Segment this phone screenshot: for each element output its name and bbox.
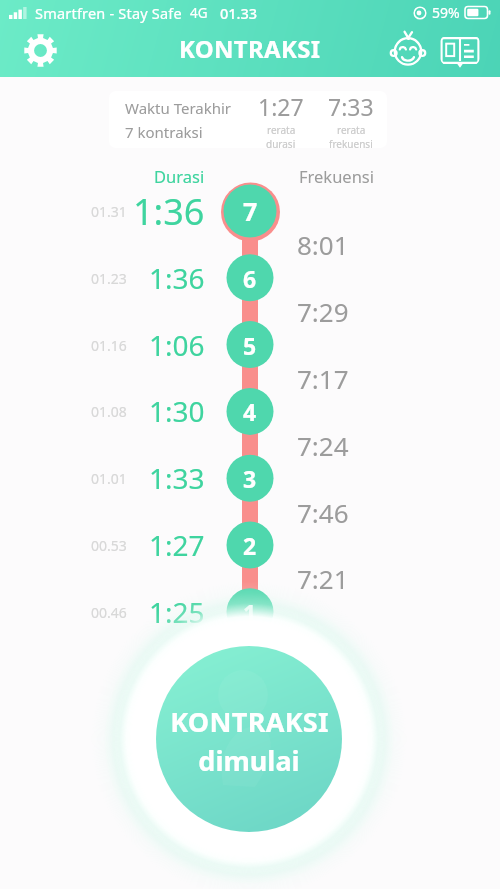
staticText: 00.46 <box>91 603 127 622</box>
staticText: KONTRAKSI <box>170 703 329 740</box>
button[interactable]: Baby profile <box>385 26 430 71</box>
staticText: Frekuensi <box>299 165 375 187</box>
staticText: 7:17 <box>297 361 349 396</box>
button[interactable]: Settings <box>18 28 62 72</box>
staticText: 1:33 <box>149 459 205 497</box>
staticText: 01.01 <box>91 469 127 488</box>
staticText: 01.23 <box>91 269 127 288</box>
staticText: 59% <box>432 3 460 22</box>
staticText: 01.16 <box>91 336 127 355</box>
staticText: 7:46 <box>297 495 349 530</box>
staticText: 4 <box>243 396 257 427</box>
staticText: 01.08 <box>91 402 127 421</box>
staticText: 01.31 <box>91 202 127 221</box>
staticText: 7:21 <box>297 561 349 596</box>
staticText: 7 <box>243 194 258 228</box>
staticText: Smartfren - Stay Safe <box>35 3 182 23</box>
staticText: 5 <box>243 330 257 361</box>
staticText: 1:36 <box>133 187 205 236</box>
staticText: KONTRAKSI <box>179 32 321 65</box>
staticText: 1:06 <box>149 326 205 364</box>
staticText: durasi <box>266 137 296 148</box>
staticText: 2 <box>243 530 257 561</box>
staticText: 1:27 <box>149 526 205 564</box>
staticText: Durasi <box>154 165 205 187</box>
staticText: 01.33 <box>220 3 258 23</box>
staticText: 7:24 <box>297 428 349 463</box>
staticText: rerata <box>267 123 296 137</box>
staticText: 1:30 <box>149 392 205 430</box>
staticText: 8:01 <box>297 227 349 262</box>
staticText: rerata <box>337 123 366 137</box>
staticText: frekuensi <box>329 137 373 148</box>
button[interactable]: Waktu Terakhir <box>109 91 387 148</box>
staticText: Waktu Terakhir <box>125 98 232 118</box>
button[interactable]: Articles <box>438 28 482 72</box>
staticText: 1 <box>243 597 257 628</box>
staticText: 00.53 <box>91 536 127 555</box>
staticText: dimulai <box>198 742 300 779</box>
staticText: 1:36 <box>149 259 205 297</box>
staticText: 3 <box>243 463 257 494</box>
button[interactable]: KONTRAKSI <box>156 648 342 834</box>
staticText: 4G <box>190 4 208 22</box>
staticText: 1:27 <box>258 91 304 122</box>
staticText: 7:33 <box>328 91 374 122</box>
staticText: 7:29 <box>297 294 349 329</box>
staticText: 6 <box>243 263 257 294</box>
staticText: 1:25 <box>149 593 205 631</box>
staticText: 7 kontraksi <box>125 122 203 142</box>
